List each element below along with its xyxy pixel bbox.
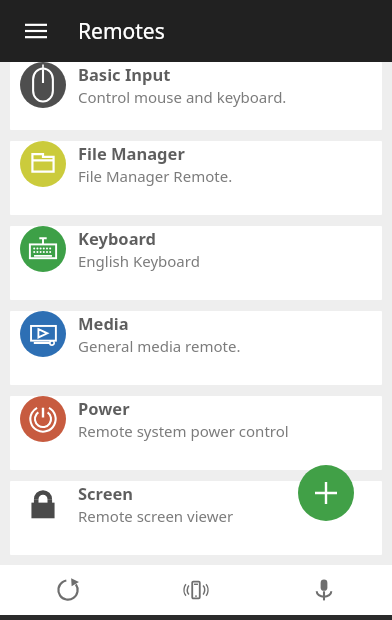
button[interactable]: Voice input: [264, 565, 384, 615]
staticText: File Manager Remote.: [78, 166, 233, 186]
button[interactable]: Screen: [10, 481, 382, 555]
button[interactable]: Keyboard: [10, 226, 382, 300]
staticText: Power: [78, 397, 130, 419]
staticText: English Keyboard: [78, 251, 200, 271]
staticText: Screen: [78, 482, 134, 504]
button[interactable]: Media: [10, 311, 382, 385]
button[interactable]: Basic Input: [10, 62, 382, 130]
staticText: Basic Input: [78, 63, 171, 85]
staticText: Remotes: [78, 17, 165, 46]
button[interactable]: Power: [10, 396, 382, 470]
button[interactable]: Open navigation menu: [12, 7, 60, 55]
staticText: Remote system power control: [78, 421, 289, 441]
staticText: File Manager: [78, 142, 185, 164]
button[interactable]: File Manager: [10, 141, 382, 215]
staticText: General media remote.: [78, 336, 241, 356]
staticText: Control mouse and keyboard.: [78, 87, 287, 107]
staticText: Keyboard: [78, 227, 156, 249]
staticText: Remote screen viewer: [78, 506, 234, 526]
button[interactable]: Refresh: [8, 565, 128, 615]
button[interactable]: Vibrate device: [136, 565, 256, 615]
staticText: Media: [78, 312, 129, 334]
button[interactable]: Add remote: [298, 465, 354, 521]
